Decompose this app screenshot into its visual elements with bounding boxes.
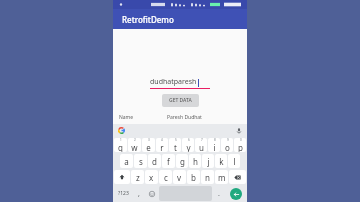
staticText: o <box>225 142 230 152</box>
button[interactable]: 8 <box>208 138 220 152</box>
button[interactable]: Google search <box>117 126 126 135</box>
staticText: e <box>146 142 151 152</box>
staticText: b <box>191 172 196 183</box>
button[interactable]: n <box>201 170 214 184</box>
staticText: t <box>174 142 177 152</box>
button[interactable]: Backspace <box>229 170 246 184</box>
button[interactable]: 7 <box>195 138 207 152</box>
staticText: p <box>238 142 243 152</box>
button[interactable]: dudhatparesh <box>150 77 210 89</box>
staticText: m <box>218 172 226 183</box>
staticText: Name <box>119 114 167 121</box>
button[interactable]: 4 <box>156 138 168 152</box>
button[interactable]: m <box>215 170 228 184</box>
staticText: Paresh Dudhat <box>167 114 202 121</box>
staticText: a <box>124 156 129 167</box>
staticText: j <box>207 156 210 167</box>
staticText: 9 <box>227 138 229 142</box>
button[interactable]: 9 <box>221 138 233 152</box>
button[interactable]: Emoji <box>146 186 157 201</box>
staticText: 8 <box>214 138 216 142</box>
button[interactable]: 6 <box>182 138 194 152</box>
staticText: c <box>164 172 168 183</box>
staticText: s <box>139 156 143 167</box>
button[interactable]: f <box>162 154 175 168</box>
button[interactable]: g <box>176 154 188 168</box>
staticText: d <box>152 156 157 167</box>
button[interactable]: Shift <box>114 170 130 184</box>
staticText: u <box>199 142 204 152</box>
button[interactable]: z <box>131 170 144 184</box>
staticText: . <box>218 189 220 199</box>
button[interactable]: h <box>189 154 201 168</box>
button[interactable]: s <box>134 154 147 168</box>
button[interactable]: a <box>120 154 133 168</box>
staticText: g <box>180 156 185 167</box>
staticText: h <box>193 156 198 167</box>
staticText: y <box>186 142 191 152</box>
staticText: i <box>213 142 216 152</box>
staticText: 2 <box>134 138 136 142</box>
button[interactable]: l <box>228 154 240 168</box>
button[interactable]: x <box>145 170 158 184</box>
button[interactable]: 3 <box>142 138 155 152</box>
staticText: v <box>177 172 182 183</box>
staticText: q <box>118 142 123 152</box>
button[interactable]: d <box>148 154 161 168</box>
staticText: r <box>160 142 164 152</box>
staticText: z <box>136 172 140 183</box>
button[interactable]: b <box>187 170 200 184</box>
staticText: 7 <box>201 138 203 142</box>
staticText: 6 <box>188 138 190 142</box>
button[interactable]: 0 <box>234 138 246 152</box>
staticText: f <box>167 156 170 167</box>
button[interactable]: c <box>159 170 172 184</box>
staticText: l <box>233 156 236 167</box>
staticText: , <box>138 189 140 199</box>
button[interactable]: 2 <box>128 138 141 152</box>
staticText: RetrofitDemo <box>122 14 174 25</box>
staticText: ?123 <box>118 190 129 197</box>
button[interactable]: . <box>214 186 224 201</box>
button[interactable]: , <box>134 186 144 201</box>
staticText: x <box>149 172 154 183</box>
staticText: 5 <box>175 138 177 142</box>
staticText: n <box>205 172 210 183</box>
button[interactable]: v <box>173 170 186 184</box>
staticText: dudhatparesh <box>150 77 197 87</box>
button[interactable]: GET DATA <box>162 94 199 107</box>
staticText: w <box>131 142 138 152</box>
staticText: k <box>219 156 224 167</box>
button[interactable]: 1 <box>114 138 127 152</box>
button[interactable]: Voice input <box>234 126 243 135</box>
button[interactable]: k <box>215 154 227 168</box>
staticText: 3 <box>148 138 150 142</box>
button[interactable]: Enter <box>226 186 245 201</box>
button[interactable]: j <box>202 154 214 168</box>
staticText: GET DATA <box>169 97 192 104</box>
staticText: 4 <box>161 138 163 142</box>
button[interactable]: 5 <box>169 138 181 152</box>
button[interactable]: ?123 <box>115 186 132 201</box>
staticText: 0 <box>240 138 242 142</box>
staticText: 1 <box>120 138 122 142</box>
